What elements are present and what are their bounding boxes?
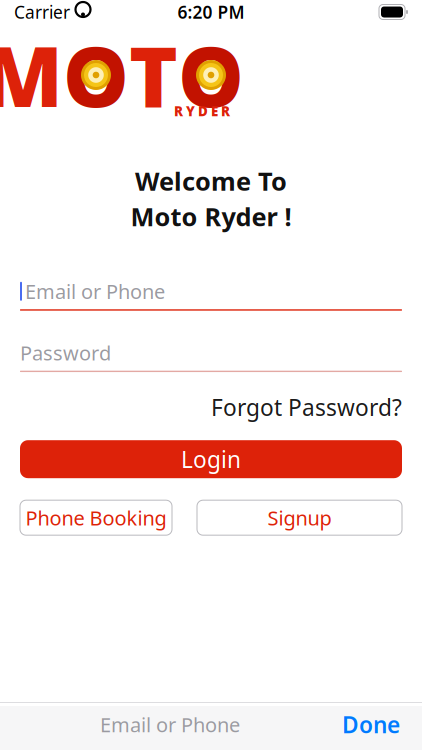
button[interactable]: Signup	[197, 500, 402, 535]
staticText: 6:20 PM	[177, 0, 244, 23]
button[interactable]: Phone Booking	[20, 500, 172, 535]
staticText: Forgot Password?	[211, 392, 402, 422]
button[interactable]: Done	[330, 701, 412, 747]
staticText: M	[0, 20, 63, 130]
staticText: Login	[181, 444, 241, 474]
staticText: O	[63, 20, 129, 130]
staticText: Carrier	[14, 0, 70, 23]
button[interactable]: Login	[20, 440, 402, 478]
staticText: Email or Phone	[100, 711, 240, 738]
staticText: Welcome To	[135, 164, 287, 198]
button[interactable]: Forgot Password?	[211, 388, 402, 426]
staticText: Signup	[267, 504, 331, 531]
staticText: Moto Ryder !	[130, 200, 291, 233]
staticText: Done	[342, 709, 400, 739]
staticText: T	[129, 20, 178, 130]
staticText: Email or Phone	[25, 278, 165, 305]
staticText: O	[178, 20, 244, 130]
staticText: R Y D E R	[174, 102, 230, 120]
staticText: Phone Booking	[25, 504, 166, 531]
staticText: Password	[20, 339, 111, 366]
